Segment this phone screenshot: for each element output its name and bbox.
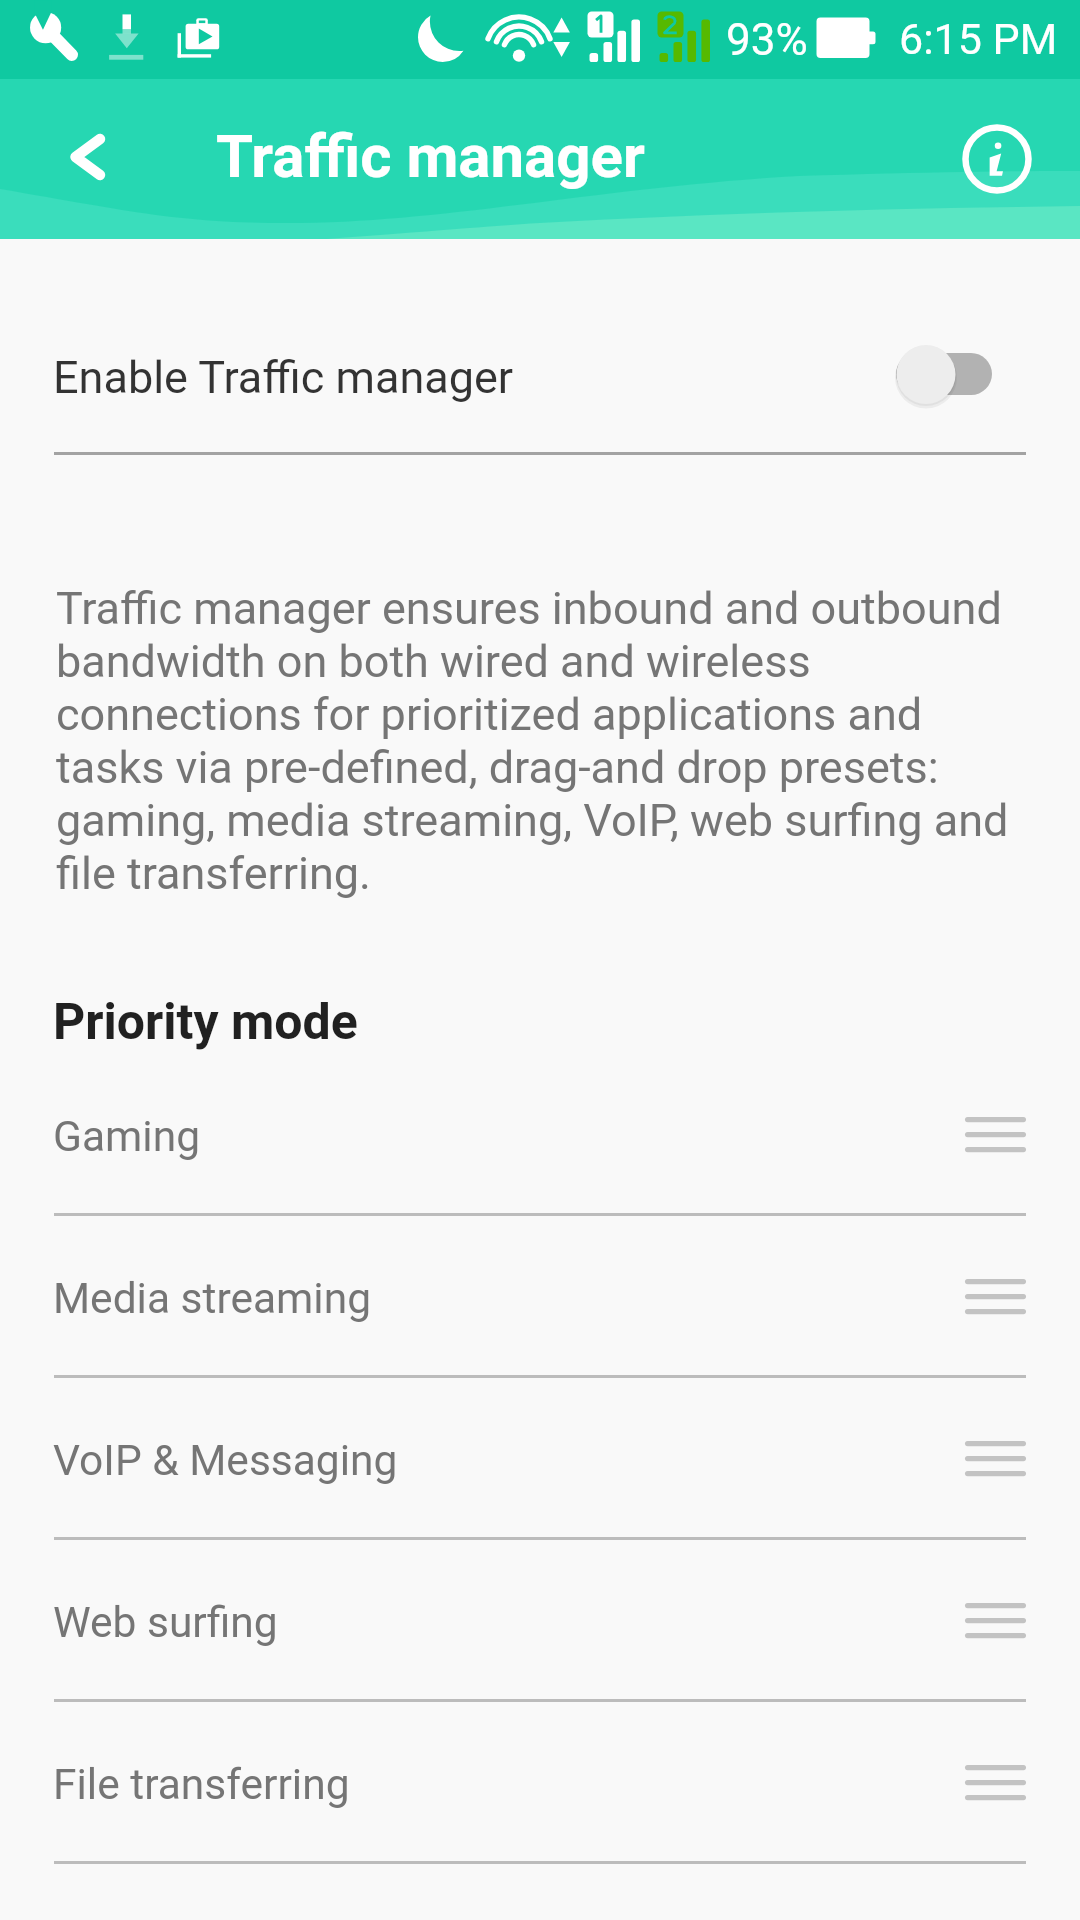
staticText: Traffic manager xyxy=(216,121,645,192)
staticText: Media streaming xyxy=(53,1273,372,1323)
button[interactable]: Back xyxy=(12,98,132,218)
staticText: Priority mode xyxy=(53,992,358,1051)
button[interactable]: Info xyxy=(937,99,1057,219)
button[interactable]: Gaming xyxy=(0,1083,1080,1245)
staticText: File transferring xyxy=(53,1759,350,1809)
staticText: 6:15 PM xyxy=(899,14,1058,65)
staticText: 93% xyxy=(726,14,808,66)
button[interactable]: VoIP & Messaging xyxy=(0,1407,1080,1569)
staticText: Enable Traffic manager xyxy=(53,351,514,404)
button[interactable]: Web surfing xyxy=(0,1569,1080,1731)
staticText: Traffic manager ensures inbound and outb… xyxy=(56,582,1021,900)
button[interactable]: Media streaming xyxy=(0,1245,1080,1407)
staticText: VoIP & Messaging xyxy=(53,1435,398,1485)
staticText: Gaming xyxy=(53,1111,201,1161)
staticText: Web surfing xyxy=(53,1597,278,1647)
button[interactable]: File transferring xyxy=(0,1731,1080,1893)
button[interactable]: Enable Traffic manager xyxy=(0,317,1080,453)
